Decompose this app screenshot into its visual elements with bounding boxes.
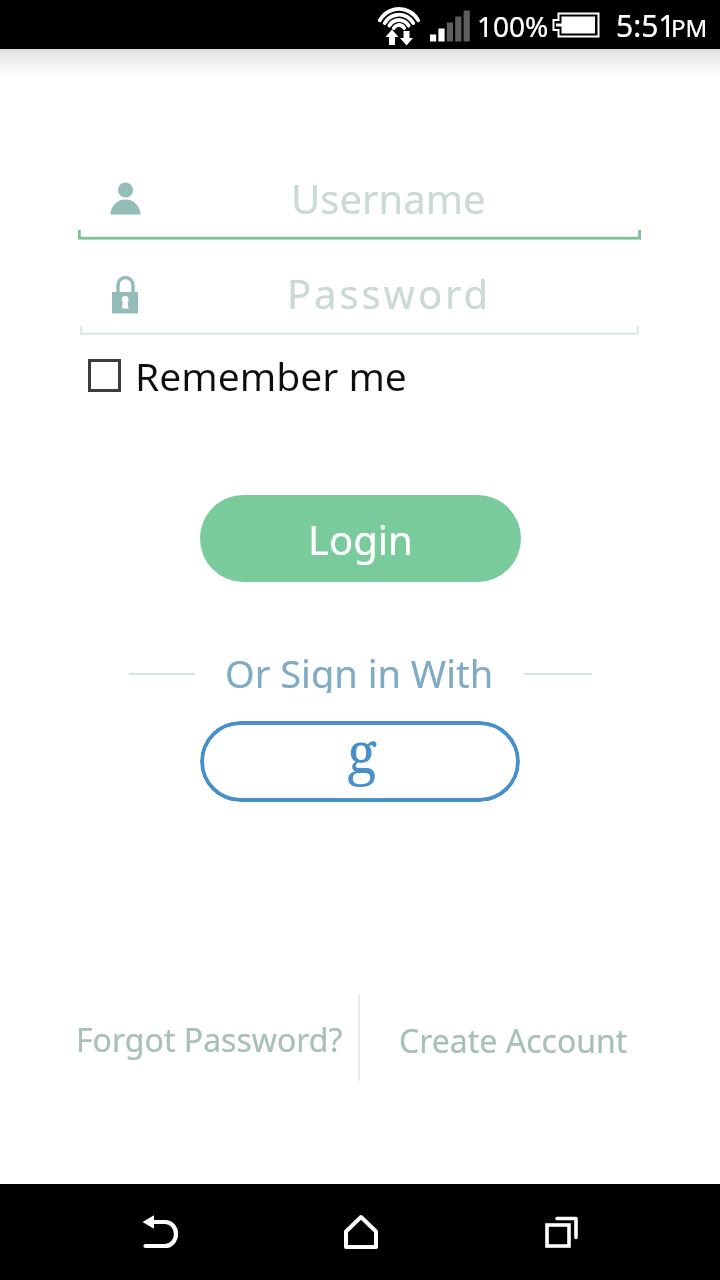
button[interactable]: Login bbox=[200, 495, 521, 582]
button[interactable]: Recent apps bbox=[514, 1184, 610, 1280]
button[interactable]: Sign in with Google bbox=[200, 721, 520, 802]
staticText: g bbox=[347, 721, 378, 789]
button[interactable]: Back bbox=[112, 1180, 208, 1276]
button[interactable]: Forgot Password? bbox=[45, 1007, 373, 1073]
button[interactable]: Home bbox=[313, 1184, 409, 1280]
staticText: Remember me bbox=[135, 349, 407, 402]
button[interactable]: Create Account bbox=[349, 1008, 677, 1074]
staticText: Login bbox=[308, 512, 413, 566]
staticText: Password bbox=[287, 266, 492, 320]
staticText: Create Account bbox=[399, 1019, 628, 1063]
staticText: 5:51 bbox=[616, 5, 676, 46]
staticText: Or Sign in With bbox=[225, 647, 494, 693]
staticText: 100% bbox=[477, 7, 549, 45]
staticText: PM bbox=[671, 11, 708, 44]
button[interactable]: Remember me bbox=[80, 348, 420, 404]
staticText: Forgot Password? bbox=[76, 1018, 343, 1062]
staticText: Username bbox=[291, 171, 486, 225]
